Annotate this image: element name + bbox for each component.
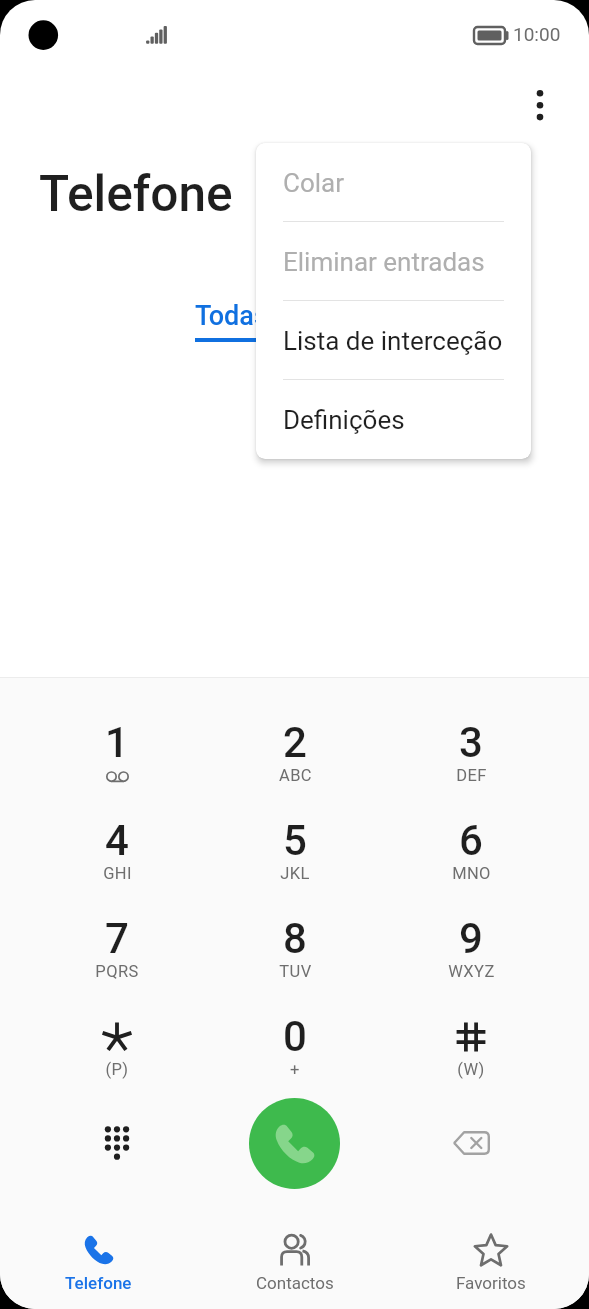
staticText: 0 <box>283 1012 307 1061</box>
staticText: WXYZ <box>448 962 495 981</box>
staticText: ABC <box>279 766 312 785</box>
staticText: (W) <box>457 1060 485 1079</box>
staticText: 7 <box>105 914 129 963</box>
staticText: TUV <box>279 962 312 981</box>
button[interactable]: 5 <box>235 790 355 888</box>
button[interactable]: Eliminar entradas <box>256 222 531 301</box>
staticText: Lista de interceção <box>283 326 503 356</box>
button[interactable]: 6 <box>411 790 531 888</box>
button[interactable]: 1 <box>57 692 177 790</box>
staticText: 10:00 <box>513 23 561 45</box>
button[interactable]: Call <box>249 1098 340 1189</box>
staticText: 8 <box>283 914 307 963</box>
button[interactable]: (W) <box>411 986 531 1084</box>
staticText: 4 <box>105 816 129 865</box>
button[interactable]: Colar <box>256 143 531 222</box>
button[interactable]: 9 <box>411 888 531 986</box>
staticText: + <box>290 1060 300 1079</box>
staticText: Todas <box>195 300 268 332</box>
button[interactable]: 4 <box>57 790 177 888</box>
staticText: 2 <box>283 718 307 767</box>
staticText: GHI <box>103 864 132 883</box>
button[interactable]: 2 <box>235 692 355 790</box>
button[interactable]: Backspace <box>427 1099 515 1187</box>
button[interactable]: 8 <box>235 888 355 986</box>
staticText: (P) <box>105 1060 129 1079</box>
button[interactable]: 0 <box>235 986 355 1084</box>
button[interactable]: 3 <box>411 692 531 790</box>
staticText: Contactos <box>256 1273 334 1293</box>
staticText: 6 <box>459 816 483 865</box>
button[interactable]: Telefone <box>0 1219 197 1309</box>
staticText: 1 <box>105 718 129 767</box>
staticText: Favoritos <box>456 1273 526 1293</box>
staticText: 9 <box>459 914 483 963</box>
button[interactable]: (P) <box>57 986 177 1084</box>
staticText: 5 <box>283 816 307 865</box>
staticText: DEF <box>456 766 487 785</box>
staticText: Definições <box>283 405 405 435</box>
button[interactable]: 7 <box>57 888 177 986</box>
staticText: Telefone <box>65 1273 132 1293</box>
button[interactable]: Hide dial pad <box>73 1099 161 1187</box>
staticText: Colar <box>283 168 345 198</box>
button[interactable]: Definições <box>256 380 531 459</box>
button[interactable]: Todas <box>195 300 277 342</box>
button[interactable]: More options <box>515 80 563 128</box>
staticText: Eliminar entradas <box>283 247 485 277</box>
button[interactable]: Favoritos <box>393 1219 589 1309</box>
button[interactable]: Contactos <box>197 1219 393 1309</box>
staticText: PQRS <box>95 962 139 981</box>
staticText: 3 <box>459 718 483 767</box>
staticText: JKL <box>280 864 310 883</box>
staticText: Telefone <box>39 165 233 223</box>
staticText: MNO <box>452 864 491 883</box>
button[interactable]: Lista de interceção <box>256 301 531 380</box>
